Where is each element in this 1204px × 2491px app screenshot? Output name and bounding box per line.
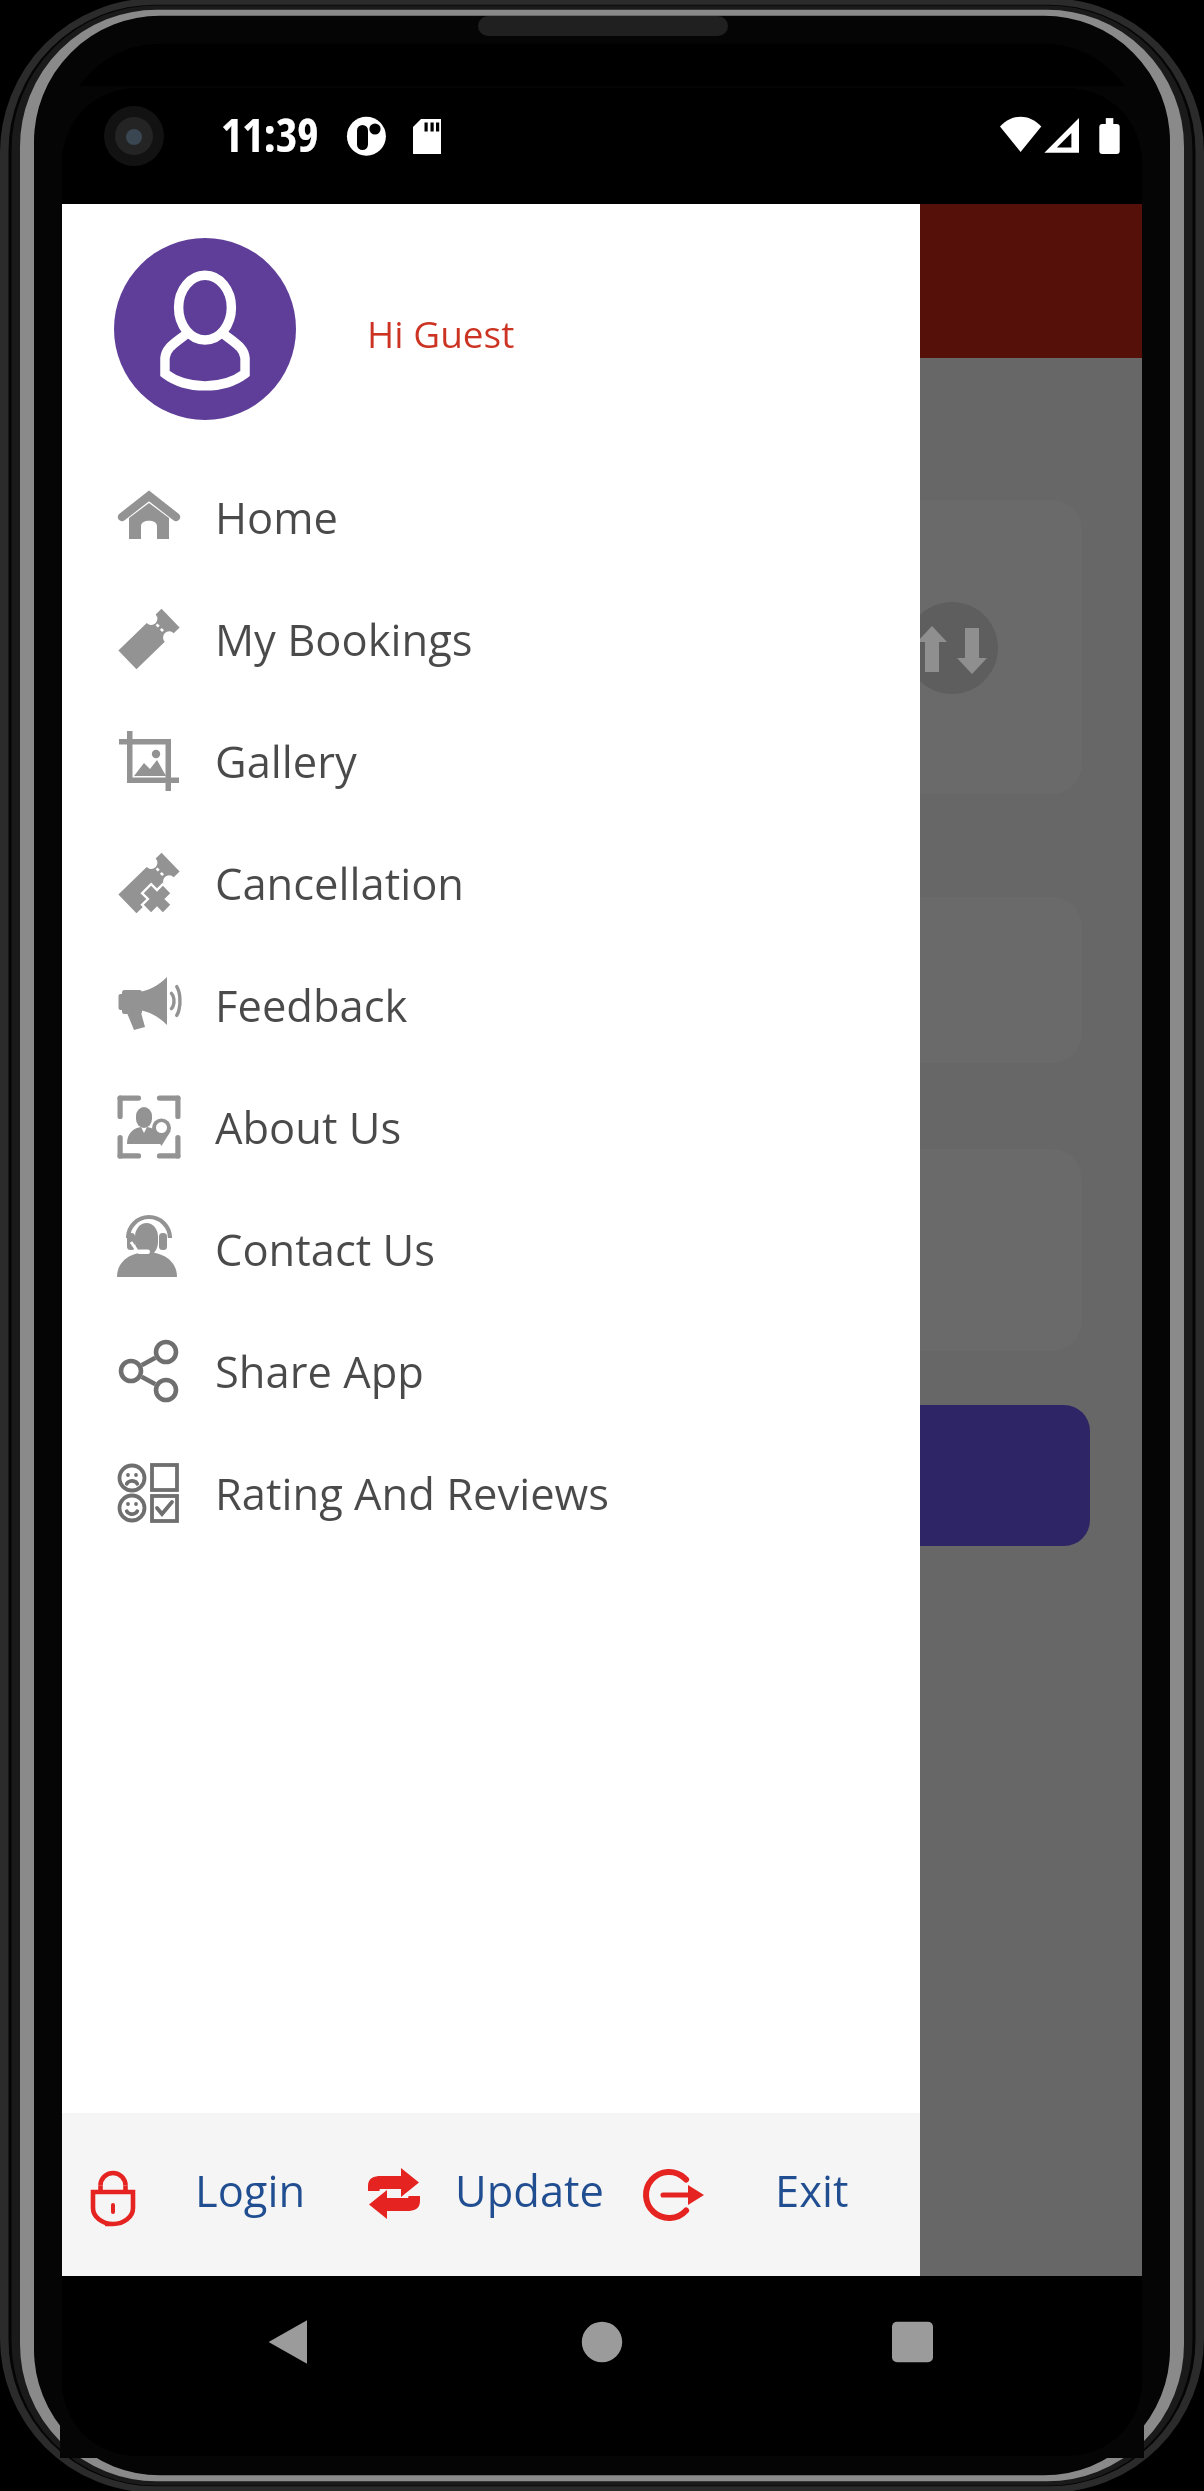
staticText: Hi Guest — [367, 308, 515, 358]
staticText: Home — [215, 488, 338, 547]
staticText: Gallery — [215, 732, 357, 791]
staticText: Feedback — [215, 976, 408, 1035]
staticText: My Bookings — [215, 610, 473, 669]
button[interactable]: Cancellation — [62, 822, 920, 944]
button[interactable]: Update — [349, 2113, 575, 2276]
button[interactable]: Login — [73, 2113, 315, 2276]
staticText: Cancellation — [215, 854, 464, 913]
button[interactable]: Home — [62, 456, 920, 578]
staticText: Exit — [775, 2161, 849, 2220]
button[interactable]: Exit — [627, 2113, 895, 2276]
staticText: 11:39 — [221, 103, 319, 166]
button[interactable]: About Us — [62, 1066, 920, 1188]
button[interactable]: Profile photo — [114, 238, 296, 420]
staticText: Update — [455, 2161, 605, 2220]
staticText: Share App — [215, 1342, 424, 1401]
staticText: Contact Us — [215, 1220, 436, 1279]
button[interactable]: Rating And Reviews — [62, 1432, 920, 1554]
staticText: Rating And Reviews — [215, 1464, 610, 1523]
button[interactable]: My Bookings — [62, 578, 920, 700]
staticText: Login — [195, 2161, 306, 2220]
staticText: About Us — [215, 1098, 402, 1157]
button[interactable]: Contact Us — [62, 1188, 920, 1310]
button[interactable]: Feedback — [62, 944, 920, 1066]
button[interactable]: Gallery — [62, 700, 920, 822]
button[interactable]: Share App — [62, 1310, 920, 1432]
